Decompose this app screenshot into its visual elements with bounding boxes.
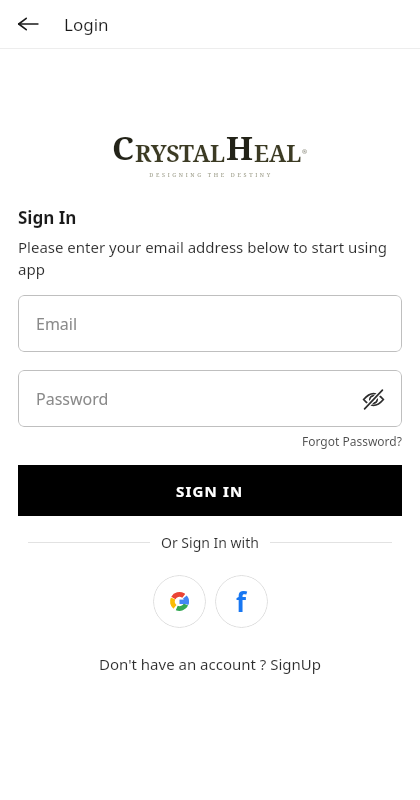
staticText: Don't have an account ? SignUp — [99, 654, 322, 674]
staticText: EAL — [254, 137, 302, 168]
button[interactable]: Don't have an account ? SignUp — [99, 654, 322, 674]
button[interactable]: SIGN IN — [18, 465, 402, 516]
staticText: C — [112, 125, 135, 170]
staticText: Or Sign In with — [161, 533, 259, 552]
staticText: ® — [302, 148, 308, 156]
staticText: SIGN IN — [176, 481, 244, 501]
staticText: RYSTAL — [135, 137, 226, 168]
button[interactable]: Forgot Password? — [302, 433, 402, 449]
staticText: f — [236, 584, 247, 619]
staticText: Forgot Password? — [302, 433, 402, 449]
staticText: Email — [36, 313, 78, 335]
button[interactable]: Password — [18, 370, 402, 427]
button[interactable]: Email — [18, 295, 402, 352]
staticText: Sign In — [18, 206, 77, 229]
staticText: Please enter your email address below to… — [18, 237, 402, 280]
button[interactable]: Show password — [356, 382, 390, 416]
button[interactable]: Back — [10, 6, 46, 42]
button[interactable]: Sign in with Facebook — [215, 575, 268, 628]
staticText: D E S I G N I N G T H E D E S T I N Y — [149, 171, 271, 178]
staticText: Login — [64, 13, 109, 36]
staticText: Password — [36, 388, 109, 410]
button[interactable]: Sign in with Google — [153, 575, 206, 628]
staticText: H — [226, 125, 254, 170]
